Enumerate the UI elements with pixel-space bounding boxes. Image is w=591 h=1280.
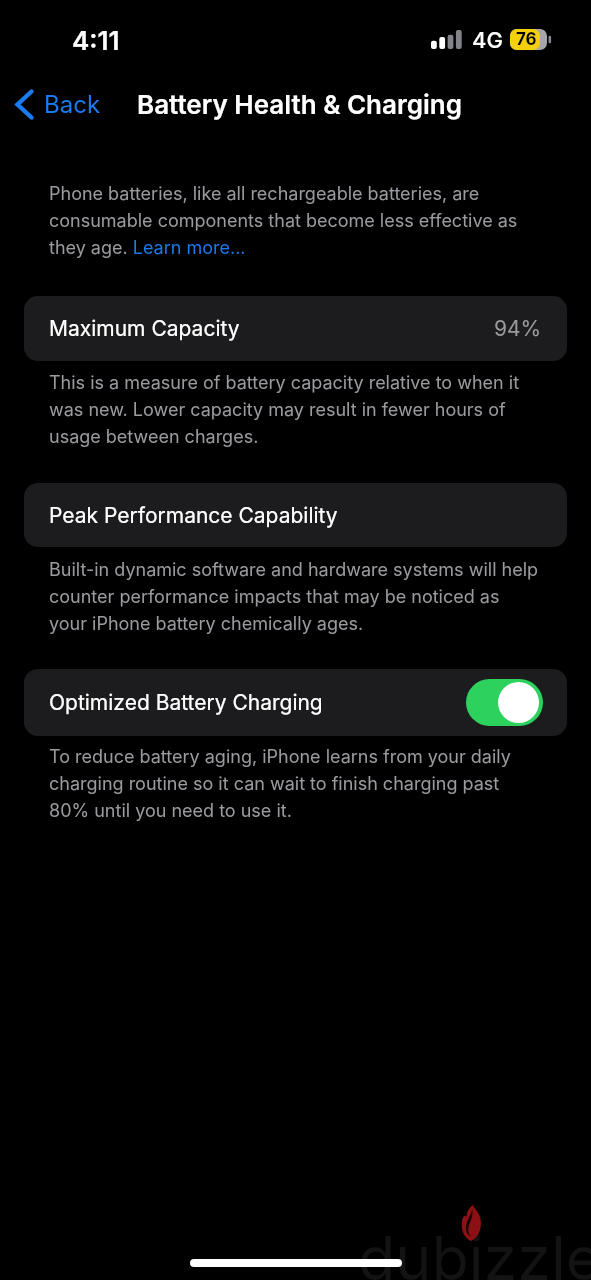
button[interactable]: Optimized Battery Charging toggle [466,679,543,726]
staticText: Battery Health & Charging [137,89,462,120]
staticText: 4:11 [72,25,120,56]
staticText: This is a measure of battery capacity re… [49,368,540,449]
staticText: 94% [494,316,542,341]
button[interactable]: Maximum Capacity [24,296,567,361]
staticText: Back [44,90,101,119]
staticText: Maximum Capacity [49,316,240,341]
staticText: Optimized Battery Charging [49,690,323,715]
staticText: dubizzle [358,1221,591,1280]
button[interactable]: Back [7,82,109,126]
other: Back [15,89,34,120]
staticText: Peak Performance Capability [49,503,338,528]
button[interactable]: Optimized Battery Charging [24,669,567,736]
staticText: 76 [516,29,537,50]
staticText: 4G [472,27,503,54]
button[interactable]: Peak Performance Capability [24,483,567,547]
staticText: To reduce battery aging, iPhone learns f… [49,742,540,823]
staticText: Phone batteries, like all rechargeable b… [49,179,540,260]
staticText: Built-in dynamic software and hardware s… [49,555,540,636]
